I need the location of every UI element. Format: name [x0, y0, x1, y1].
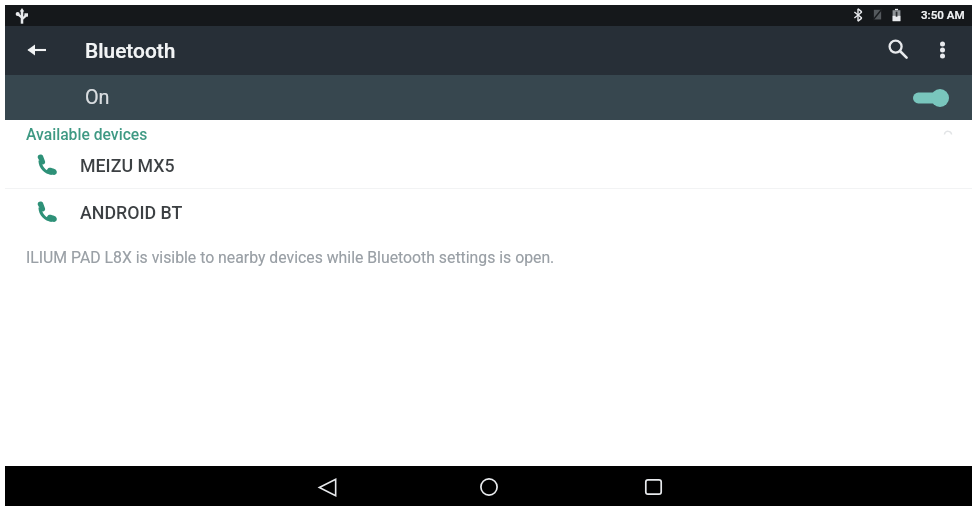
staticText: ILIUM PAD L8X is visible to nearby devic… — [26, 248, 555, 267]
button[interactable]: More options — [919, 29, 963, 73]
button[interactable]: Home — [469, 467, 509, 507]
button[interactable]: On — [5, 75, 972, 120]
staticText: MEIZU MX5 — [80, 155, 175, 176]
button[interactable]: Search — [876, 29, 920, 73]
staticText: On — [85, 86, 110, 109]
staticText: ANDROID BT — [80, 202, 183, 223]
staticText: Bluetooth — [85, 39, 176, 63]
button[interactable]: Back — [307, 467, 347, 507]
button[interactable]: ANDROID BT — [5, 189, 972, 235]
staticText: 3:50 AM — [921, 8, 965, 22]
staticText: Available devices — [26, 125, 148, 143]
button[interactable]: MEIZU MX5 — [5, 142, 972, 188]
button[interactable]: Recent apps — [633, 467, 673, 507]
button[interactable]: Scanning — [939, 122, 957, 140]
button[interactable]: Navigate up — [19, 33, 55, 69]
